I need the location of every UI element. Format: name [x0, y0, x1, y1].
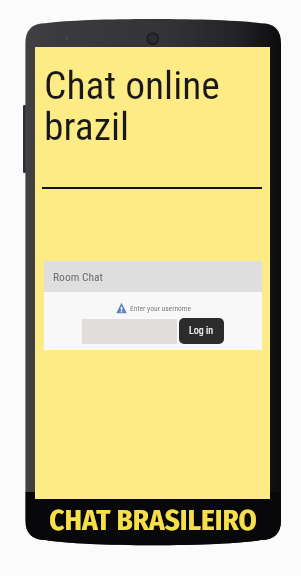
- button[interactable]: CHAT BRASILEIRO: [25, 502, 281, 538]
- button[interactable]: Log in: [179, 318, 224, 344]
- staticText: CHAT BRASILEIRO: [49, 503, 257, 538]
- staticText: Chat online brazil: [44, 62, 220, 150]
- staticText: Enter your usernome: [130, 304, 191, 313]
- staticText: Room Chat: [53, 270, 103, 283]
- staticText: Log in: [189, 325, 214, 337]
- button[interactable]: Room Chat: [44, 261, 262, 292]
